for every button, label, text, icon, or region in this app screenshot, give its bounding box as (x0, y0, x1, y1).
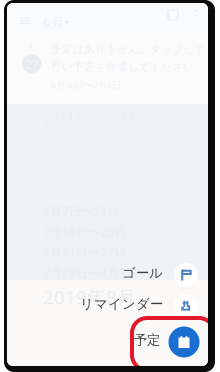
staticText: 6月30日〜7月6日 (51, 79, 121, 91)
staticText: 2019年8月 (43, 285, 136, 309)
staticText: しい予定を作成してください (51, 60, 194, 73)
staticText: 予定はありません。タップして新 (51, 43, 205, 69)
staticText: 27 (25, 56, 39, 72)
staticText: 6月 (43, 13, 64, 31)
button[interactable]: ゴール (113, 262, 199, 288)
staticText: ゴール (122, 265, 163, 281)
staticText: 予定 (134, 332, 160, 348)
button[interactable]: 予定 (130, 325, 200, 359)
button[interactable]: リマインダー (69, 293, 199, 319)
staticText: リマインダー (80, 296, 163, 312)
staticText: 木 (27, 43, 35, 53)
staticText: 7月28日〜8月3日 (43, 265, 138, 281)
